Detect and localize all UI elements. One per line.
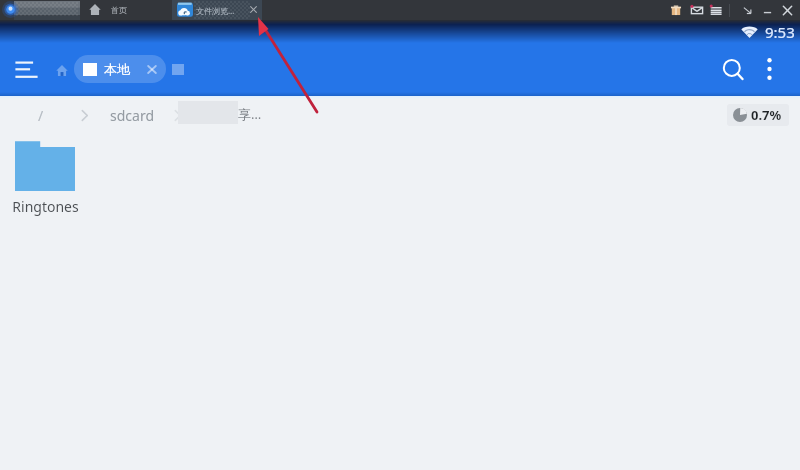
- button[interactable]: Search: [722, 59, 744, 81]
- button[interactable]: Navigation menu: [16, 58, 37, 79]
- button[interactable]: Home: [56, 64, 68, 77]
- staticText: 本地: [104, 61, 130, 77]
- button[interactable]: More options: [761, 58, 778, 80]
- button[interactable]: Close tab: [249, 5, 258, 14]
- button[interactable]: /: [33, 104, 49, 126]
- staticText: 9:53: [765, 22, 795, 42]
- button[interactable]: 本地: [74, 55, 166, 83]
- button[interactable]: Messages: [690, 3, 704, 17]
- button[interactable]: Menu: [709, 3, 723, 17]
- button[interactable]: 0.7%: [727, 104, 789, 126]
- staticText: 0.7%: [751, 106, 782, 124]
- staticText: 文件浏览…: [196, 5, 235, 16]
- button[interactable]: Minimize: [761, 4, 774, 17]
- button[interactable]: Ringtones: [7, 138, 83, 216]
- staticText: 首页: [111, 5, 127, 15]
- button[interactable]: 首页: [85, 0, 135, 20]
- button[interactable]: Restore: [741, 4, 754, 17]
- staticText: Ringtones: [12, 197, 79, 216]
- button[interactable]: Gifts: [669, 3, 683, 17]
- button[interactable]: sdcard: [110, 104, 155, 126]
- button[interactable]: Close: [781, 4, 794, 17]
- staticText: 享…: [238, 105, 262, 123]
- button[interactable]: 文件浏览…: [172, 0, 262, 20]
- staticText: /: [38, 106, 44, 125]
- staticText: sdcard: [110, 106, 155, 125]
